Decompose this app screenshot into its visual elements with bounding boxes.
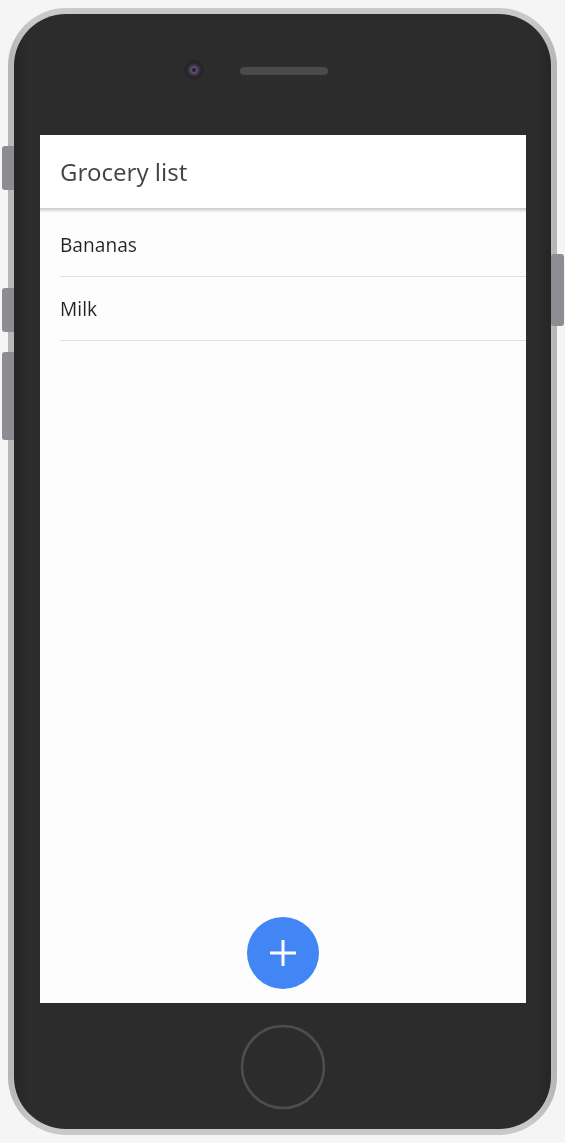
button[interactable]: Add item xyxy=(247,917,319,989)
button[interactable]: Milk xyxy=(40,277,526,341)
button[interactable]: Grocery list xyxy=(40,135,526,208)
staticText: Grocery list xyxy=(60,155,188,188)
staticText: Bananas xyxy=(60,232,137,258)
button[interactable]: Bananas xyxy=(40,213,526,277)
staticText: Milk xyxy=(60,296,98,322)
